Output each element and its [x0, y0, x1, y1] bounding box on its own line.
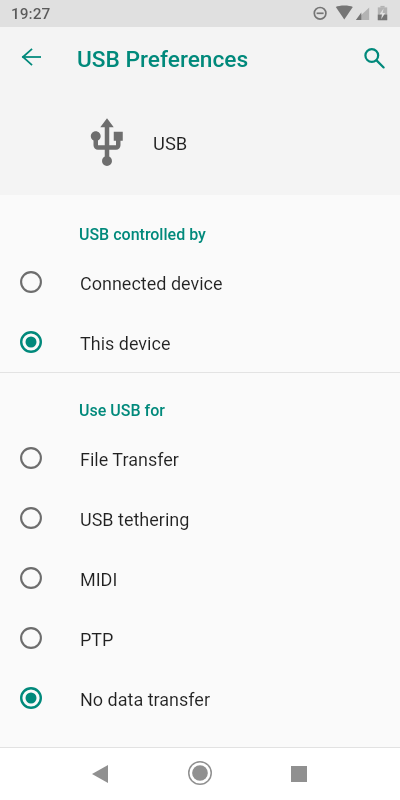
button[interactable]: Connected device [0, 252, 400, 312]
staticText: 19:27 [11, 5, 51, 23]
button[interactable]: Navigate up [12, 37, 52, 77]
staticText: USB tethering [80, 509, 190, 530]
button[interactable]: Home [166, 748, 234, 800]
button[interactable]: No data transfer [0, 668, 400, 728]
staticText: File Transfer [80, 449, 179, 470]
staticText: PTP [80, 629, 114, 650]
button[interactable]: PTP [0, 608, 400, 668]
button[interactable]: Back [66, 748, 134, 800]
button[interactable]: This device [0, 312, 400, 372]
button[interactable]: Recent apps [265, 748, 333, 800]
staticText: Connected device [80, 273, 223, 294]
button[interactable]: File Transfer [0, 428, 400, 488]
staticText: Use USB for [79, 401, 165, 420]
staticText: USB controlled by [79, 225, 206, 244]
button[interactable]: MIDI [0, 548, 400, 608]
staticText: USB Preferences [77, 46, 249, 73]
staticText: This device [80, 333, 171, 354]
staticText: MIDI [80, 569, 118, 590]
staticText: USB [153, 133, 188, 155]
button[interactable]: USB tethering [0, 488, 400, 548]
button[interactable]: Search [354, 37, 394, 77]
staticText: No data transfer [80, 689, 211, 710]
